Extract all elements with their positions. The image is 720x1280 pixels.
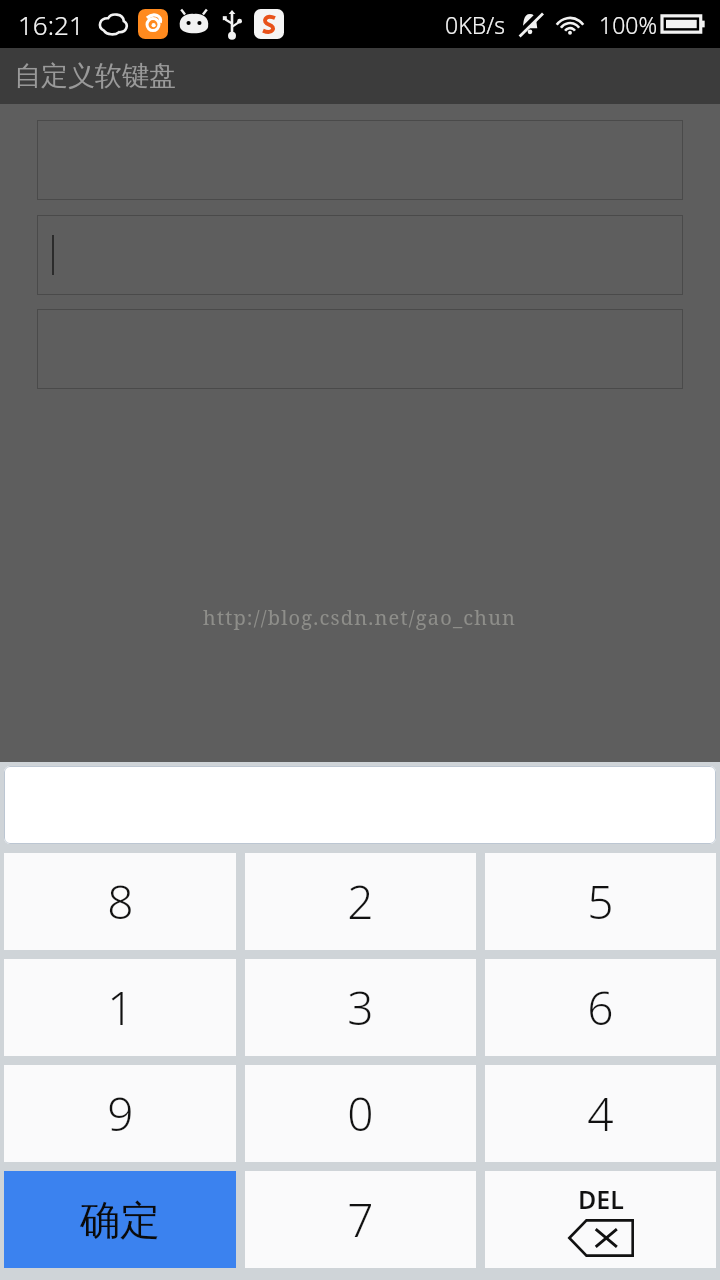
- button[interactable]: 2: [245, 853, 476, 950]
- staticText: 9: [107, 1082, 134, 1145]
- button[interactable]: 1: [4, 959, 236, 1056]
- staticText: http://blog.csdn.net/gao_chun: [203, 604, 517, 631]
- staticText: 3: [347, 976, 374, 1039]
- button[interactable]: 确定: [4, 1171, 236, 1268]
- button[interactable]: 5: [485, 853, 716, 950]
- staticText: 100%: [599, 9, 658, 40]
- button[interactable]: 9: [4, 1065, 236, 1162]
- staticText: 8: [107, 870, 134, 933]
- staticText: 16:21: [18, 7, 84, 42]
- staticText: 确定: [80, 1195, 160, 1245]
- staticText: 自定义软键盘: [14, 59, 176, 93]
- button[interactable]: 8: [4, 853, 236, 950]
- button[interactable]: [4, 766, 716, 844]
- button[interactable]: [37, 215, 683, 295]
- button[interactable]: [37, 120, 683, 200]
- staticText: 4: [587, 1082, 614, 1145]
- button[interactable]: 7: [245, 1171, 476, 1268]
- staticText: 0KB/s: [445, 9, 505, 40]
- button[interactable]: 0: [245, 1065, 476, 1162]
- staticText: 5: [587, 870, 614, 933]
- staticText: 2: [347, 870, 374, 933]
- staticText: 6: [587, 976, 614, 1039]
- button[interactable]: 4: [485, 1065, 716, 1162]
- staticText: DEL: [578, 1182, 624, 1216]
- button[interactable]: 6: [485, 959, 716, 1056]
- button[interactable]: 3: [245, 959, 476, 1056]
- staticText: 0: [347, 1082, 374, 1145]
- staticText: 7: [347, 1188, 374, 1251]
- button[interactable]: Delete: [485, 1171, 716, 1268]
- button[interactable]: [37, 309, 683, 389]
- staticText: 1: [107, 976, 134, 1039]
